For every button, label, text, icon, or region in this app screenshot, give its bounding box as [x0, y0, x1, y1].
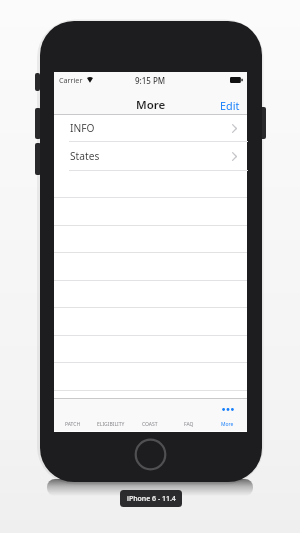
staticText: FAQ — [184, 421, 194, 428]
button[interactable]: More — [208, 398, 247, 431]
button[interactable]: COAST — [130, 398, 169, 431]
button[interactable]: PATCH — [54, 398, 92, 431]
staticText: iPhone 6 - 11.4 — [127, 494, 176, 504]
staticText: PATCH — [65, 421, 81, 428]
staticText: COAST — [142, 421, 158, 428]
staticText: More — [221, 421, 234, 428]
staticText: INFO — [70, 121, 95, 135]
staticText: Carrier — [59, 75, 83, 85]
staticText: States — [70, 149, 100, 163]
button[interactable]: Edit — [220, 91, 247, 119]
button[interactable]: INFO — [54, 115, 247, 141]
staticText: More — [136, 97, 166, 113]
staticText: 9:15 PM — [135, 75, 166, 86]
staticText: ELIGIBILITY — [97, 421, 125, 428]
staticText: Edit — [220, 98, 240, 113]
button[interactable]: ELIGIBILITY — [92, 398, 130, 431]
button[interactable]: FAQ — [169, 398, 208, 431]
button[interactable]: States — [54, 142, 247, 170]
